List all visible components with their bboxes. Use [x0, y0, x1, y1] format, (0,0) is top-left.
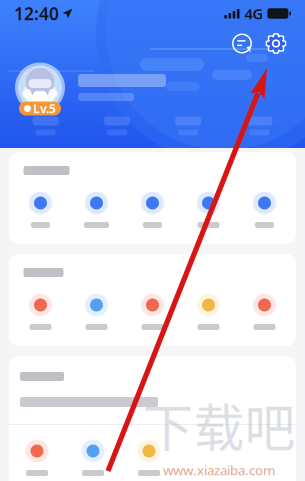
button[interactable]: [10, 116, 81, 135]
button[interactable]: Lv.5: [0, 58, 305, 116]
button[interactable]: [68, 190, 124, 228]
button[interactable]: [236, 190, 292, 228]
button[interactable]: [124, 292, 180, 330]
button[interactable]: [124, 190, 180, 228]
staticText: Lv.5: [33, 100, 56, 116]
button[interactable]: Messages: [225, 28, 259, 58]
staticText: 4G: [244, 4, 263, 23]
staticText: 下载吧: [142, 388, 295, 461]
button[interactable]: [236, 292, 292, 330]
button[interactable]: [68, 292, 124, 330]
button[interactable]: [180, 292, 236, 330]
button[interactable]: [12, 292, 68, 330]
button[interactable]: [152, 116, 224, 135]
button[interactable]: [180, 190, 236, 228]
staticText: www.xiazaiba.com: [163, 461, 275, 479]
button[interactable]: Settings: [259, 28, 293, 58]
staticText: 12:40: [14, 2, 59, 25]
button[interactable]: [224, 116, 295, 135]
button[interactable]: [65, 438, 121, 476]
button[interactable]: [9, 438, 65, 476]
button[interactable]: [81, 116, 152, 135]
button[interactable]: [121, 438, 177, 476]
button[interactable]: [12, 190, 68, 228]
